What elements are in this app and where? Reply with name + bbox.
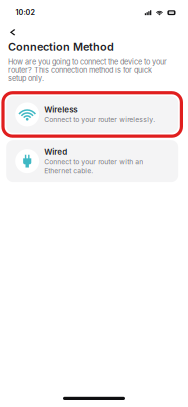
button[interactable]: Back <box>1 24 24 40</box>
staticText: Wireless <box>44 105 77 114</box>
staticText: 10:02 <box>15 8 34 17</box>
staticText: How are you going to connect the device … <box>8 57 167 83</box>
staticText: Connection Method <box>8 40 114 53</box>
button[interactable]: Wireless <box>6 96 178 133</box>
staticText: Connect to your router wirelessly. <box>44 115 155 124</box>
staticText: Connect to your router with an <box>44 158 143 166</box>
button[interactable]: Wired <box>6 140 178 182</box>
staticText: Ethernet cable. <box>44 166 93 175</box>
staticText: Wired <box>44 147 67 157</box>
